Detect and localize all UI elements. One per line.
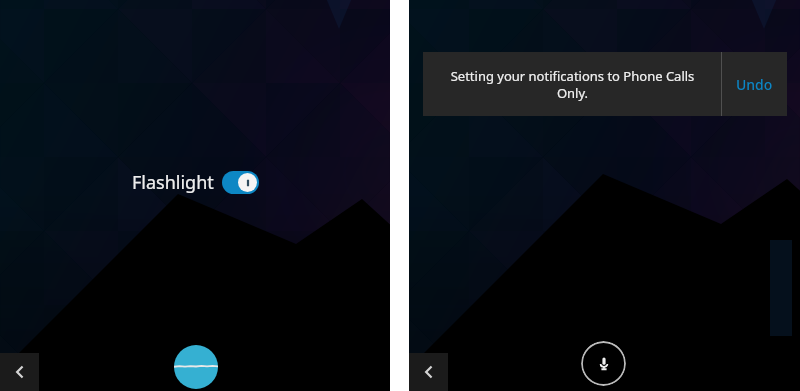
button[interactable]: Voice search [174,345,218,389]
button[interactable]: Flashlight toggle [222,171,259,194]
staticText: Undo [736,75,773,94]
button[interactable]: Back [409,353,448,391]
staticText: Flashlight [132,170,214,195]
button[interactable]: Undo [722,52,787,116]
button[interactable]: Back [0,353,39,391]
button[interactable]: Microphone [581,341,626,386]
staticText: Setting your notifications to Phone Call… [449,67,696,102]
button[interactable]: Setting your notifications to Phone Call… [423,52,721,116]
